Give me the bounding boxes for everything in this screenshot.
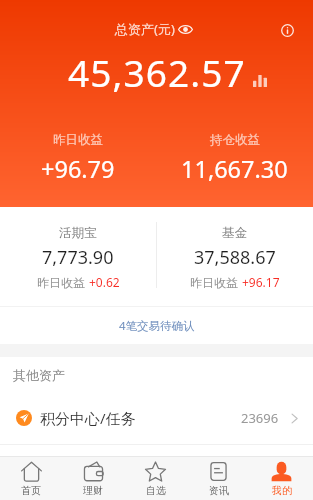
button[interactable]: 积分中心/任务 [0,392,313,444]
staticText: 7,773.90 [42,245,114,270]
button[interactable]: 基金 [156,207,313,290]
staticText: 理财 [83,484,103,497]
button[interactable]: 昨日收益 [0,132,156,185]
staticText: +0.62 [89,274,120,290]
staticText: 昨日收益 [53,132,103,148]
button[interactable]: Toggle balance visibility [177,21,193,37]
button[interactable]: 4笔交易待确认 [0,307,313,344]
button[interactable]: Asset trend chart [248,68,272,92]
staticText: 其他资产 [13,367,65,383]
button[interactable]: 理财 [62,456,124,500]
button[interactable]: 资讯 [187,456,250,500]
staticText: 37,588.67 [194,245,276,270]
button[interactable]: 持仓收益 [156,132,313,185]
staticText: 45,362.57 [68,47,246,97]
staticText: +96.17 [242,274,280,290]
button[interactable]: 自选 [124,456,187,500]
staticText: 资讯 [209,484,229,497]
staticText: 昨日收益 [190,275,238,290]
button[interactable]: 我的 [250,456,313,500]
staticText: 总资产(元) [115,20,175,38]
staticText: 基金 [222,225,247,241]
button[interactable]: 活期宝 [0,207,156,290]
staticText: 持仓收益 [210,132,260,148]
staticText: 我的 [272,484,292,497]
staticText: 首页 [21,484,41,497]
staticText: 自选 [146,484,166,497]
button[interactable]: Info [275,18,299,42]
staticText: 4笔交易待确认 [119,318,195,334]
staticText: +96.79 [41,153,115,185]
staticText: 积分中心/任务 [40,408,136,428]
staticText: 23696 [241,409,279,427]
button[interactable]: 首页 [0,456,62,500]
staticText: 昨日收益 [37,275,85,290]
staticText: 11,667.30 [181,153,288,185]
staticText: 活期宝 [59,225,97,241]
